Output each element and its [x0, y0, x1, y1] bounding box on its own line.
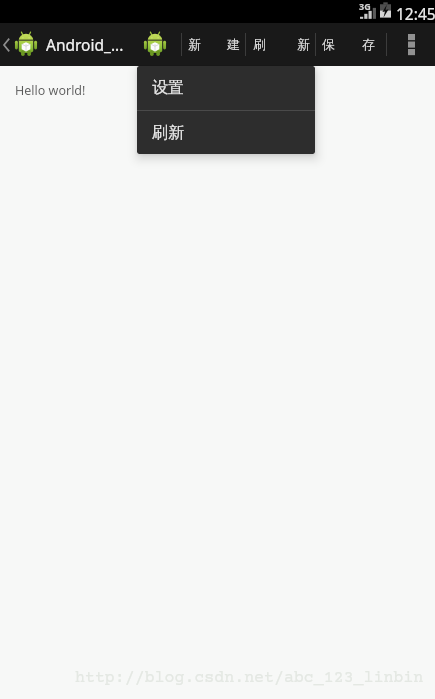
staticText: 保 — [322, 37, 335, 53]
staticText: 12:45 — [396, 3, 435, 24]
button[interactable]: More options — [387, 23, 435, 66]
button[interactable]: 新建 — [182, 23, 245, 66]
staticText: http://blog.csdn.net/abc_123_linbin — [75, 669, 424, 688]
staticText: 3G — [359, 0, 371, 12]
staticText: 新 — [297, 37, 310, 53]
button[interactable]: 刷新 — [137, 111, 315, 154]
staticText: 刷新 — [152, 123, 184, 143]
button[interactable]: 刷新 — [246, 23, 315, 66]
button[interactable]: Android_... — [0, 23, 128, 66]
staticText: Hello world! — [15, 82, 86, 99]
staticText: 建 — [227, 37, 240, 53]
staticText: 新 — [188, 37, 201, 53]
staticText: 设置 — [152, 78, 184, 98]
button[interactable]: App icon — [137, 23, 172, 66]
button[interactable]: 设置 — [137, 66, 315, 110]
staticText: 存 — [362, 37, 375, 53]
staticText: Android_... — [46, 34, 124, 55]
button[interactable]: 保存 — [316, 23, 386, 66]
staticText: 刷 — [253, 37, 266, 53]
